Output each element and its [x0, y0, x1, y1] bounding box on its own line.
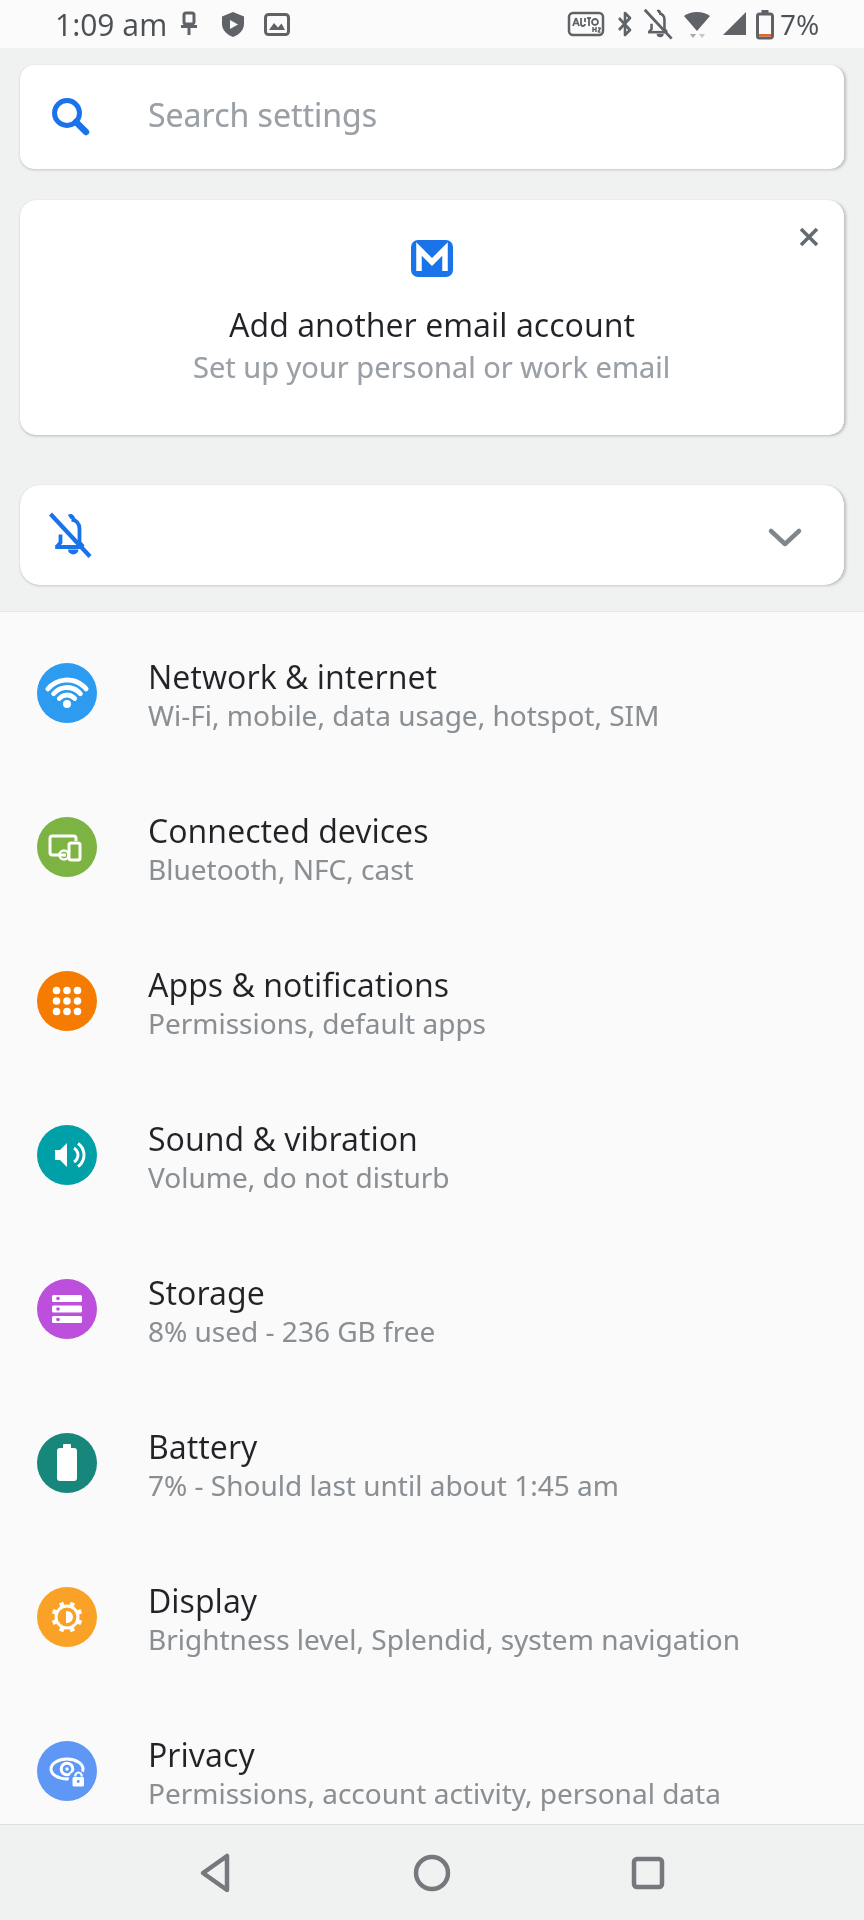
staticText: Search settings: [148, 93, 378, 137]
staticText: 8% used - 236 GB free: [148, 1312, 436, 1350]
staticText: Permissions, account activity, personal …: [148, 1774, 721, 1812]
staticText: Add another email account: [229, 303, 636, 347]
staticText: Connected devices: [148, 809, 429, 853]
button[interactable]: Sound & vibration: [0, 1078, 864, 1232]
staticText: Brightness level, Splendid, system navig…: [148, 1620, 741, 1658]
staticText: Apps & notifications: [148, 963, 449, 1007]
button[interactable]: [176, 1825, 256, 1920]
button[interactable]: [392, 1825, 472, 1920]
button[interactable]: Storage: [0, 1232, 864, 1386]
staticText: Storage: [148, 1271, 265, 1315]
staticText: Permissions, default apps: [148, 1004, 487, 1042]
button[interactable]: Add another email account: [20, 200, 844, 435]
staticText: 7%: [780, 5, 820, 43]
button[interactable]: Battery: [0, 1386, 864, 1540]
staticText: Volume, do not disturb: [148, 1158, 450, 1196]
button[interactable]: [20, 485, 844, 585]
staticText: Wi-Fi, mobile, data usage, hotspot, SIM: [148, 696, 660, 734]
button[interactable]: Network & internet: [0, 616, 864, 770]
button[interactable]: Connected devices: [0, 770, 864, 924]
button[interactable]: [794, 222, 824, 252]
staticText: Bluetooth, NFC, cast: [148, 850, 414, 888]
button[interactable]: [608, 1825, 688, 1920]
staticText: Privacy: [148, 1733, 255, 1777]
staticText: 1:09 am: [55, 4, 168, 45]
staticText: Battery: [148, 1425, 258, 1469]
staticText: Network & internet: [148, 655, 438, 699]
button[interactable]: Search settings: [20, 65, 844, 169]
staticText: Sound & vibration: [148, 1117, 418, 1161]
button[interactable]: Display: [0, 1540, 864, 1694]
staticText: Display: [148, 1579, 258, 1623]
staticText: 7% - Should last until about 1:45 am: [148, 1466, 619, 1504]
staticText: Set up your personal or work email: [193, 347, 671, 386]
button[interactable]: Apps & notifications: [0, 924, 864, 1078]
button[interactable]: Privacy: [0, 1694, 864, 1848]
